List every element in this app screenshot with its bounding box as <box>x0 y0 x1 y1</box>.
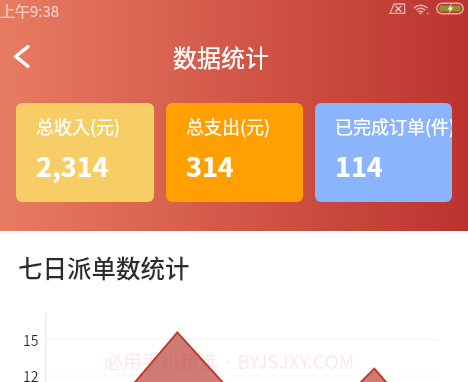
button[interactable]: 总收入(元) <box>16 103 154 202</box>
staticText: 12 <box>23 366 39 382</box>
staticText: 总收入(元) <box>36 113 121 139</box>
staticText: 七日派单数统计 <box>18 250 190 285</box>
other: Wi-Fi <box>412 3 430 15</box>
staticText: 114 <box>335 146 383 185</box>
staticText: 上午9:38 <box>0 0 60 19</box>
staticText: 必用手机精选 · BYJSJXY.COM <box>104 347 355 375</box>
staticText: 314 <box>186 146 234 185</box>
other: No signal <box>389 3 406 15</box>
other: Battery charging <box>436 2 464 15</box>
staticText: 已完成订单(件) <box>335 113 452 139</box>
button[interactable]: 已完成订单(件) <box>315 103 452 202</box>
button[interactable]: Back <box>0 32 45 80</box>
staticText: 总支出(元) <box>186 113 271 139</box>
staticText: 15 <box>23 330 39 350</box>
staticText: 2,314 <box>36 146 109 185</box>
staticText: 数据统计 <box>173 39 269 74</box>
button[interactable]: 总支出(元) <box>166 103 303 202</box>
